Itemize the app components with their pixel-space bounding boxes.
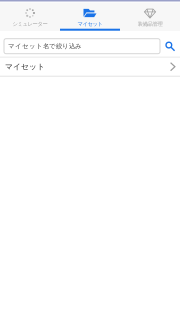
button[interactable]: 装備品管理 — [120, 2, 180, 31]
staticText: マイセット — [5, 62, 45, 71]
button[interactable]: マイセット — [0, 58, 180, 76]
button[interactable]: シミュレーター — [0, 2, 60, 31]
button[interactable]: マイセット — [60, 2, 120, 31]
staticText: 装備品管理 — [137, 20, 162, 27]
staticText: シミュレーター — [12, 20, 47, 27]
staticText: マイセット — [77, 20, 102, 27]
button[interactable]: 検索 — [160, 39, 180, 54]
staticText: マイセット名で絞り込み — [8, 42, 82, 50]
